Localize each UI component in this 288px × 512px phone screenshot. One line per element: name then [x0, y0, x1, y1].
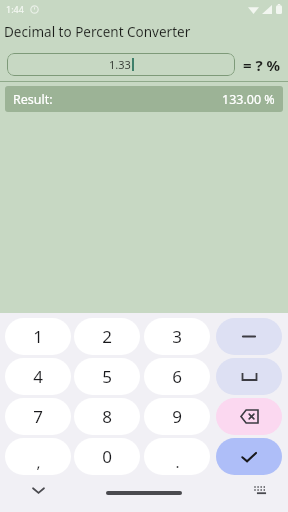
button[interactable]: 1.33 — [7, 53, 235, 76]
staticText: 6 — [172, 365, 182, 388]
button[interactable]: , — [5, 438, 71, 475]
staticText: 7 — [33, 405, 43, 428]
button[interactable]: Backspace — [216, 398, 282, 435]
staticText: 1 — [33, 325, 43, 348]
staticText: = ? % — [243, 55, 281, 75]
button[interactable]: 3 — [144, 318, 210, 355]
button[interactable]: 5 — [74, 358, 140, 395]
button[interactable]: Switch keyboard — [250, 479, 272, 501]
button[interactable]: 9 — [144, 398, 210, 435]
staticText: 4 — [33, 365, 43, 388]
staticText: 133.00 % — [222, 91, 275, 108]
button[interactable]: Minus — [216, 318, 282, 355]
staticText: 1:44 — [6, 3, 24, 15]
staticText: 3 — [172, 325, 182, 348]
button[interactable]: . — [144, 438, 210, 475]
button[interactable]: Space — [216, 358, 282, 395]
button[interactable]: 0 — [74, 438, 140, 475]
staticText: . — [175, 452, 180, 472]
staticText: Decimal to Percent Converter — [4, 23, 191, 41]
staticText: 2 — [102, 325, 112, 348]
button[interactable]: 8 — [74, 398, 140, 435]
staticText: 0 — [102, 445, 112, 468]
button[interactable]: Enter — [216, 438, 282, 475]
staticText: 8 — [102, 405, 112, 428]
staticText: 5 — [102, 365, 112, 388]
button[interactable]: 2 — [74, 318, 140, 355]
staticText: 1.33 — [109, 57, 131, 72]
button[interactable]: 4 — [5, 358, 71, 395]
button[interactable]: Hide keyboard — [27, 479, 49, 501]
staticText: , — [36, 452, 41, 472]
button[interactable]: 6 — [144, 358, 210, 395]
button[interactable]: 1 — [5, 318, 71, 355]
staticText: Result: — [13, 91, 53, 108]
button[interactable]: 7 — [5, 398, 71, 435]
staticText: 9 — [172, 405, 182, 428]
